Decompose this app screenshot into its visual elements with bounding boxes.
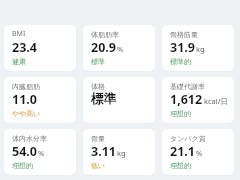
- button[interactable]: 体格: [83, 77, 155, 123]
- staticText: %: [38, 148, 45, 158]
- staticText: 体格: [91, 82, 105, 91]
- staticText: 骨格筋量: [170, 30, 198, 39]
- staticText: %: [196, 148, 203, 158]
- staticText: 体内水分率: [12, 134, 47, 143]
- staticText: 骨量: [91, 134, 105, 143]
- staticText: やや高い: [12, 109, 41, 118]
- staticText: 20.9: [91, 39, 116, 56]
- staticText: 理想的: [170, 161, 191, 170]
- staticText: 体脂肪率: [91, 30, 119, 39]
- staticText: 内臓脂肪: [12, 82, 40, 91]
- staticText: タンパク質: [170, 134, 206, 143]
- staticText: 標準的: [170, 57, 191, 66]
- staticText: 標準: [91, 57, 105, 66]
- staticText: 11.0: [12, 91, 37, 108]
- staticText: 23.4: [12, 39, 37, 56]
- staticText: 理想的: [170, 109, 191, 118]
- staticText: 54.0: [12, 143, 37, 160]
- button[interactable]: 内臓脂肪: [4, 77, 76, 123]
- staticText: kg: [117, 148, 126, 158]
- button[interactable]: タンパク質: [162, 129, 234, 175]
- button[interactable]: 体内水分率: [4, 129, 76, 175]
- staticText: kcal/日: [204, 96, 229, 106]
- staticText: 1,612: [170, 91, 203, 108]
- staticText: %: [117, 44, 124, 54]
- staticText: 31.9: [170, 39, 195, 56]
- staticText: kg: [196, 44, 205, 54]
- staticText: BMI: [12, 29, 26, 39]
- button[interactable]: 骨格筋量: [162, 25, 234, 71]
- staticText: 健康: [12, 57, 26, 66]
- button[interactable]: 基礎代謝率: [162, 77, 234, 123]
- staticText: 標準: [91, 91, 116, 107]
- staticText: 21.1: [170, 143, 195, 160]
- button[interactable]: BMI: [4, 25, 76, 71]
- button[interactable]: 体脂肪率: [83, 25, 155, 71]
- staticText: 理想的: [12, 161, 33, 170]
- staticText: 低い: [91, 161, 106, 170]
- button[interactable]: 骨量: [83, 129, 155, 175]
- staticText: 3.11: [91, 143, 116, 160]
- staticText: 基礎代謝率: [170, 82, 205, 91]
